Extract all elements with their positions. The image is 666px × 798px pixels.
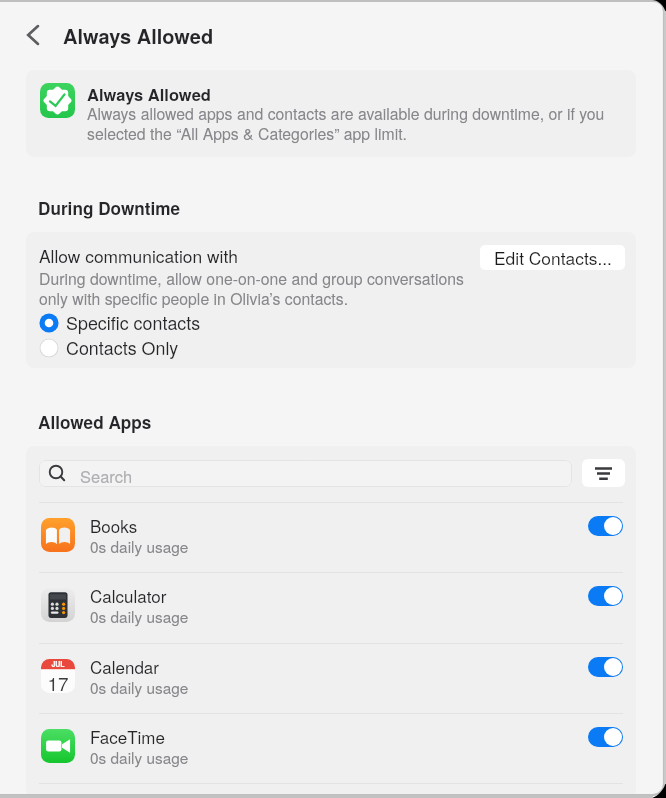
staticText: Contacts Only [66, 334, 179, 360]
staticText: 0s daily usage [90, 535, 189, 557]
button[interactable]: Sort and filter [582, 459, 625, 487]
staticText: During downtime, allow one-on-one and gr… [39, 267, 464, 310]
button[interactable]: Back [19, 22, 45, 48]
staticText: Search [80, 464, 133, 487]
button[interactable]: Calculator [26, 573, 636, 643]
staticText: FaceTime [90, 724, 165, 748]
staticText: Always Allowed [87, 82, 211, 106]
staticText: Calendar [90, 654, 159, 678]
button[interactable]: Contacts Only [39, 335, 269, 361]
button[interactable]: Search [39, 460, 572, 487]
staticText: During Downtime [38, 196, 181, 221]
button[interactable]: Edit Contacts... [480, 245, 625, 270]
staticText: 0s daily usage [90, 605, 189, 627]
staticText: Always allowed apps and contacts are ava… [87, 102, 605, 145]
button[interactable]: Toggle app [588, 586, 623, 606]
staticText: Books [90, 513, 138, 537]
staticText: 0s daily usage [90, 746, 189, 768]
staticText: Always Allowed [63, 21, 214, 50]
button[interactable]: Specific contacts [39, 310, 269, 336]
staticText: JUL [41, 659, 75, 669]
button[interactable]: Toggle app [588, 657, 623, 677]
button[interactable]: Books [26, 503, 636, 573]
button[interactable]: JUL [26, 644, 636, 714]
staticText: Calculator [90, 583, 167, 607]
button[interactable]: Toggle app [588, 516, 623, 536]
staticText: Specific contacts [66, 309, 201, 335]
staticText: 17 [41, 669, 75, 693]
staticText: 0s daily usage [90, 676, 189, 698]
staticText: Allow communication with [39, 243, 238, 268]
button[interactable]: Toggle app [588, 727, 623, 747]
staticText: Allowed Apps [38, 410, 152, 435]
staticText: Edit Contacts... [494, 245, 612, 270]
button[interactable]: FaceTime [26, 714, 636, 784]
